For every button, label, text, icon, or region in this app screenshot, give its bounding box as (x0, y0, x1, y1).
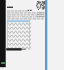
button[interactable]: Data table (7, 20, 30, 48)
button[interactable]: Navigation rail (0, 0, 6, 67)
button[interactable]: Footer action (6, 48, 26, 51)
